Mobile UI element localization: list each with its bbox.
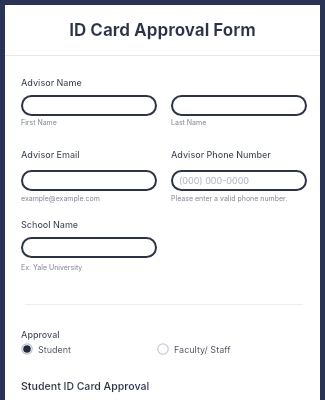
staticText: Last Name xyxy=(171,118,207,126)
staticText: Approval xyxy=(21,329,60,340)
staticText: example@example.com xyxy=(21,194,100,202)
staticText: (000) 000-0000 xyxy=(179,175,250,186)
button[interactable]: (000) 000-0000 xyxy=(171,170,307,191)
button[interactable] xyxy=(171,95,307,116)
button[interactable]: Faculty/ Staff xyxy=(157,343,231,355)
button[interactable] xyxy=(21,237,157,258)
button[interactable]: Student xyxy=(21,343,72,355)
staticText: Advisor Phone Number xyxy=(171,149,271,160)
staticText: Please enter a valid phone number. xyxy=(171,194,288,202)
staticText: Student ID Card Approval xyxy=(21,380,150,393)
staticText: Faculty/ Staff xyxy=(174,344,231,355)
button[interactable] xyxy=(21,95,157,116)
staticText: School Name xyxy=(21,219,79,230)
staticText: Advisor Email xyxy=(21,149,80,160)
button[interactable] xyxy=(21,170,157,191)
staticText: First Name xyxy=(21,118,57,126)
staticText: ID Card Approval Form xyxy=(69,20,256,41)
staticText: Advisor Name xyxy=(21,77,82,88)
staticText: Ex: Yale University xyxy=(21,263,83,271)
staticText: Student xyxy=(38,344,72,355)
